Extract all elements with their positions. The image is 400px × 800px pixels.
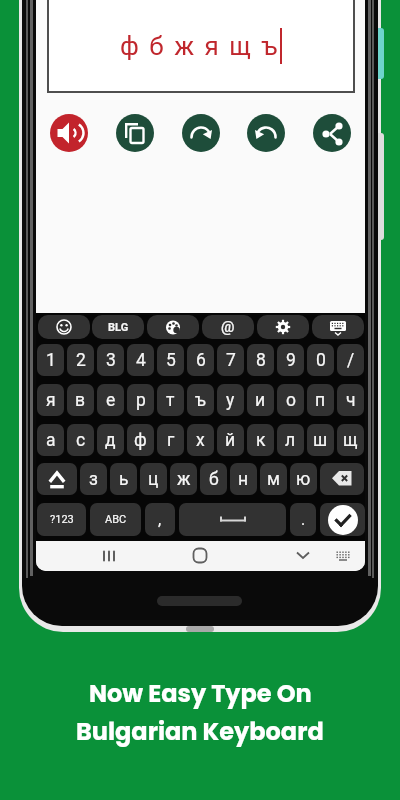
button[interactable]: @ xyxy=(202,315,254,339)
button[interactable]: з xyxy=(80,463,107,495)
button[interactable]: 1 xyxy=(37,344,64,376)
button[interactable] xyxy=(313,114,351,152)
button[interactable]: а xyxy=(37,424,64,456)
staticText: н xyxy=(238,469,249,490)
staticText: ц xyxy=(148,469,159,490)
button[interactable]: б xyxy=(200,463,227,495)
button[interactable]: я xyxy=(37,384,64,416)
staticText: 4 xyxy=(136,350,146,371)
staticText: о xyxy=(286,390,296,411)
staticText: л xyxy=(285,430,296,451)
staticText: 1 xyxy=(46,350,56,371)
staticText: ш xyxy=(313,430,328,451)
button[interactable]: BLG xyxy=(92,315,144,339)
staticText: / xyxy=(347,350,355,371)
button[interactable] xyxy=(37,463,77,495)
staticText: б xyxy=(209,469,219,490)
staticText: ф xyxy=(134,430,147,451)
staticText: ъ xyxy=(195,390,206,411)
button[interactable]: / xyxy=(337,344,364,376)
button[interactable] xyxy=(320,463,364,495)
staticText: Now Easy Type On xyxy=(89,677,312,711)
button[interactable] xyxy=(312,315,364,339)
button[interactable]: ч xyxy=(337,384,364,416)
button[interactable] xyxy=(116,114,154,152)
button[interactable] xyxy=(147,315,199,339)
button[interactable]: ю xyxy=(290,463,317,495)
button[interactable]: ц xyxy=(140,463,167,495)
button[interactable] xyxy=(320,503,365,536)
staticText: ж xyxy=(177,469,191,490)
button[interactable]: ъ xyxy=(187,384,214,416)
button[interactable] xyxy=(247,114,285,152)
button[interactable] xyxy=(50,114,88,152)
staticText: с xyxy=(76,430,86,451)
button[interactable]: 5 xyxy=(157,344,184,376)
button[interactable] xyxy=(38,315,90,339)
button[interactable]: с xyxy=(67,424,94,456)
button[interactable] xyxy=(257,315,309,339)
button[interactable]: й xyxy=(217,424,244,456)
staticText: х xyxy=(196,430,205,451)
button[interactable]: 6 xyxy=(187,344,214,376)
staticText: я xyxy=(46,390,56,411)
button[interactable]: ж xyxy=(170,463,197,495)
button[interactable]: н xyxy=(230,463,257,495)
staticText: Bulgarian Keyboard xyxy=(76,715,324,749)
button[interactable]: ?123 xyxy=(37,503,86,536)
button[interactable]: ш xyxy=(307,424,334,456)
button[interactable]: 3 xyxy=(97,344,124,376)
button[interactable]: и xyxy=(247,384,274,416)
button[interactable]: к xyxy=(247,424,274,456)
staticText: к xyxy=(256,430,266,451)
button[interactable]: х xyxy=(187,424,214,456)
button[interactable]: г xyxy=(157,424,184,456)
button[interactable]: м xyxy=(260,463,287,495)
staticText: 3 xyxy=(106,350,116,371)
staticText: 5 xyxy=(166,350,176,371)
button[interactable]: у xyxy=(217,384,244,416)
button[interactable]: ь xyxy=(110,463,137,495)
button[interactable]: д xyxy=(97,424,124,456)
staticText: 0 xyxy=(316,350,326,371)
staticText: й xyxy=(225,430,236,451)
button[interactable]: р xyxy=(127,384,154,416)
staticText: а xyxy=(46,430,56,451)
staticText: ?123 xyxy=(50,513,74,526)
button[interactable]: 8 xyxy=(247,344,274,376)
button[interactable]: е xyxy=(97,384,124,416)
button[interactable] xyxy=(179,503,286,536)
button[interactable]: 7 xyxy=(217,344,244,376)
staticText: м xyxy=(267,469,280,490)
button[interactable]: ф xyxy=(127,424,154,456)
button[interactable]: 0 xyxy=(307,344,334,376)
staticText: г xyxy=(167,430,175,451)
staticText: BLG xyxy=(108,321,129,334)
button[interactable]: 2 xyxy=(67,344,94,376)
staticText: з xyxy=(89,469,98,490)
button[interactable]: ABC xyxy=(90,503,141,536)
button[interactable]: 9 xyxy=(277,344,304,376)
button[interactable]: л xyxy=(277,424,304,456)
button[interactable]: 4 xyxy=(127,344,154,376)
staticText: ч xyxy=(346,390,356,411)
button[interactable]: . xyxy=(290,503,316,536)
staticText: у xyxy=(226,390,235,411)
staticText: е xyxy=(106,390,116,411)
staticText: ю xyxy=(296,469,311,490)
button[interactable]: п xyxy=(307,384,334,416)
staticText: р xyxy=(136,390,146,411)
staticText: 8 xyxy=(256,350,266,371)
button[interactable]: , xyxy=(145,503,175,536)
staticText: щ xyxy=(343,430,358,451)
button[interactable]: т xyxy=(157,384,184,416)
button[interactable]: о xyxy=(277,384,304,416)
staticText: ь xyxy=(119,469,129,490)
button[interactable]: в xyxy=(67,384,94,416)
button[interactable] xyxy=(182,114,220,152)
staticText: и xyxy=(255,390,266,411)
button[interactable]: щ xyxy=(337,424,364,456)
staticText: ф б ж я щ ъ xyxy=(120,31,280,61)
staticText: , xyxy=(158,510,162,529)
staticText: 2 xyxy=(76,350,86,371)
